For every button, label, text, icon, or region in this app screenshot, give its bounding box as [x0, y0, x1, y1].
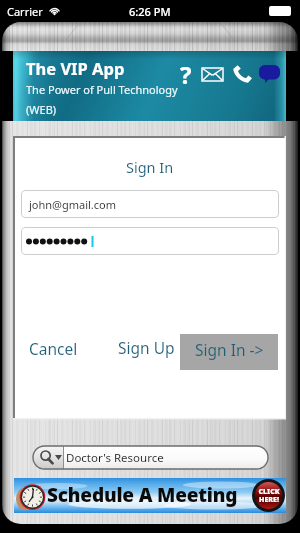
staticText: Sign Up — [118, 337, 175, 358]
staticText: The Power of Pull Technology — [26, 82, 178, 97]
staticText: (WEB) — [26, 102, 57, 117]
button[interactable]: Sign Up — [117, 335, 175, 359]
staticText: Sign In — [126, 157, 174, 177]
staticText: Sign In -> — [195, 339, 264, 360]
staticText: Doctor's Resource — [66, 450, 164, 466]
staticText: Carrier — [7, 4, 43, 19]
button[interactable]: john@gmail.com — [21, 190, 279, 218]
button[interactable] — [21, 227, 279, 255]
button[interactable]: The VIP App — [13, 51, 286, 121]
button[interactable]: Sign In -> — [180, 334, 278, 370]
button[interactable]: Mail — [199, 64, 225, 84]
staticText: CLICK HERE! — [258, 487, 280, 504]
button[interactable]: Click here — [252, 479, 285, 512]
button[interactable]: Doctor's Resource — [33, 446, 268, 469]
staticText: john@gmail.com — [29, 197, 117, 212]
staticText: Schedule A Meeting — [47, 482, 238, 508]
staticText: Cancel — [29, 338, 78, 359]
staticText: ? — [180, 58, 192, 88]
button[interactable]: Cancel — [26, 336, 80, 360]
button[interactable]: Schedule A Meeting — [14, 478, 286, 513]
button[interactable]: Call — [229, 62, 255, 86]
staticText: The VIP App — [26, 57, 125, 79]
button[interactable]: Help — [172, 58, 200, 88]
button[interactable]: Chat — [256, 63, 282, 85]
staticText: 6:26 PM — [129, 4, 171, 19]
